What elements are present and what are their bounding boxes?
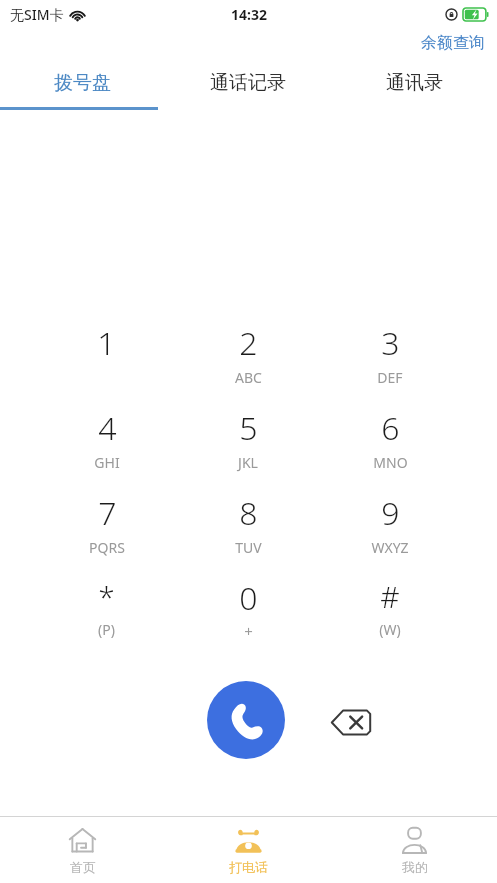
button[interactable]: 1 xyxy=(36,307,177,392)
button[interactable]: 5 xyxy=(177,392,319,477)
button[interactable]: 8 xyxy=(177,477,319,562)
staticText: # xyxy=(380,576,400,617)
button[interactable]: 通话记录 xyxy=(165,62,331,112)
button[interactable]: 打电话 xyxy=(165,817,331,883)
staticText: 2 xyxy=(239,321,258,365)
staticText: + xyxy=(244,621,253,641)
staticText: 3 xyxy=(381,321,400,365)
staticText: WXYZ xyxy=(371,538,409,557)
staticText: * xyxy=(98,576,115,617)
staticText: 8 xyxy=(239,491,258,535)
staticText: 0 xyxy=(239,576,258,620)
staticText: TUV xyxy=(235,538,262,557)
staticText: 4 xyxy=(98,406,117,450)
button[interactable]: * xyxy=(36,562,177,647)
staticText: 通话记录 xyxy=(210,71,286,95)
button[interactable]: Delete xyxy=(321,697,381,747)
staticText: ABC xyxy=(235,368,262,387)
staticText: (P) xyxy=(98,620,115,639)
staticText: 6 xyxy=(381,406,400,450)
staticText: DEF xyxy=(377,368,403,387)
button[interactable]: 我的 xyxy=(331,817,497,883)
button[interactable]: 拨号盘 xyxy=(0,62,165,112)
staticText: 5 xyxy=(239,406,258,450)
button[interactable]: 6 xyxy=(319,392,461,477)
staticText: 9 xyxy=(381,491,400,535)
button[interactable]: 通讯录 xyxy=(331,62,497,112)
button[interactable]: Call xyxy=(207,681,285,759)
staticText: MNO xyxy=(373,453,408,472)
button[interactable]: 3 xyxy=(319,307,461,392)
staticText: 拨号盘 xyxy=(54,71,111,95)
staticText: 14:32 xyxy=(231,5,267,24)
staticText: 首页 xyxy=(70,859,96,875)
staticText: 打电话 xyxy=(229,859,268,875)
staticText: (W) xyxy=(379,620,401,639)
button[interactable]: 7 xyxy=(36,477,177,562)
button[interactable]: 0 xyxy=(177,562,319,647)
button[interactable]: 9 xyxy=(319,477,461,562)
staticText: PQRS xyxy=(89,538,125,557)
button[interactable]: 2 xyxy=(177,307,319,392)
staticText: 1 xyxy=(97,321,116,365)
staticText: 通讯录 xyxy=(386,71,443,95)
button[interactable]: 4 xyxy=(36,392,177,477)
staticText: GHI xyxy=(94,453,120,472)
button[interactable]: # xyxy=(319,562,461,647)
button[interactable]: 首页 xyxy=(0,817,165,883)
staticText: 7 xyxy=(98,491,117,535)
staticText: JKL xyxy=(238,453,258,472)
staticText: 无SIM卡 xyxy=(10,5,64,24)
staticText: 余额查询 xyxy=(421,33,485,53)
staticText: 我的 xyxy=(402,859,428,875)
button[interactable]: 余额查询 xyxy=(409,30,497,56)
